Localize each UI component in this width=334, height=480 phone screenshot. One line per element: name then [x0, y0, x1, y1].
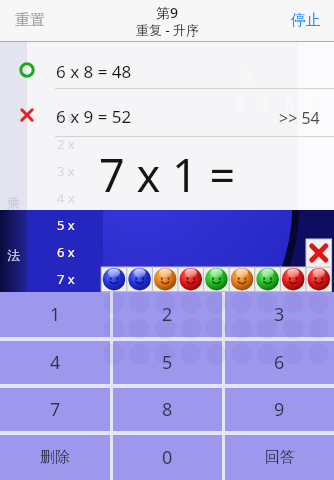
staticText: 0 [162, 445, 173, 470]
staticText: 9 [274, 397, 285, 422]
button[interactable]: 删除 [0, 435, 110, 480]
button[interactable] [306, 239, 332, 267]
staticText: 8 [162, 397, 173, 422]
button[interactable]: 3 [225, 292, 334, 337]
staticText: 2 x [57, 135, 75, 153]
staticText: 重置 [15, 11, 45, 30]
button[interactable]: 0 [113, 435, 222, 480]
staticText: 7 x [57, 270, 75, 288]
button[interactable]: 7 [0, 388, 110, 431]
staticText: 第9 [156, 3, 179, 21]
staticText: 法 [7, 247, 20, 263]
staticText: 重复 - 升序 [136, 21, 199, 39]
staticText: 4 [50, 350, 61, 375]
staticText: 5 x [57, 216, 75, 234]
staticText: 3 [274, 302, 285, 327]
button[interactable]: 4 [0, 341, 110, 384]
staticText: 回答 [265, 448, 295, 467]
button[interactable]: 回答 [225, 435, 334, 480]
staticText: 4 x [57, 189, 75, 207]
button[interactable]: 6 [225, 341, 334, 384]
button[interactable]: 停止 [284, 8, 328, 32]
staticText: 6 x 8 = 48 [56, 60, 132, 80]
button[interactable]: 1 [0, 292, 110, 337]
button[interactable]: 重置 [8, 8, 52, 32]
staticText: 9 [310, 92, 320, 114]
button[interactable]: 8 [113, 388, 222, 431]
button[interactable]: 2 [113, 292, 222, 337]
staticText: 1 x [57, 108, 75, 126]
staticText: 停止 [291, 11, 321, 30]
staticText: 3 x [57, 162, 75, 180]
staticText: 1 [50, 302, 61, 327]
staticText: 5 [162, 350, 173, 375]
button[interactable]: 5 [113, 341, 222, 384]
staticText: 2 [162, 302, 173, 327]
staticText: 6 x [57, 243, 75, 261]
staticText: 删除 [40, 448, 70, 467]
button[interactable]: 9 [225, 388, 334, 431]
staticText: >> 54 [279, 107, 320, 127]
staticText: 6 x 9 = 52 [56, 105, 132, 125]
staticText: 乘 [7, 195, 20, 211]
staticText: 7 [50, 397, 61, 422]
staticText: 7 x 1 = [99, 144, 236, 204]
staticText: 6 [274, 350, 285, 375]
